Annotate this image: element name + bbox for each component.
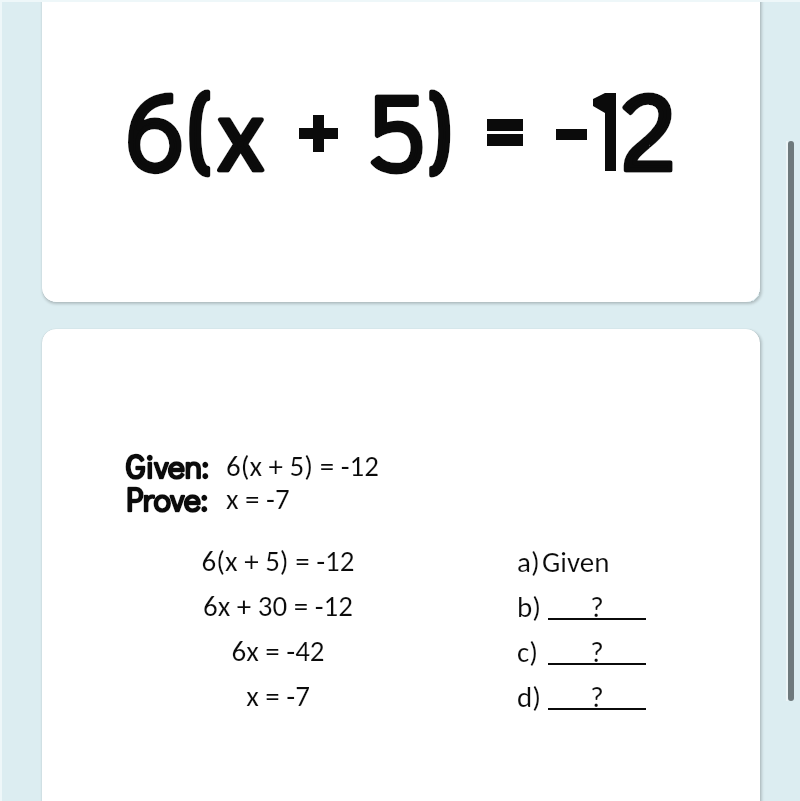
staticText: Given: [126,445,209,487]
staticText: 2 [622,58,676,198]
staticText: 6 [126,58,185,198]
staticText: 2 [622,58,676,198]
staticText: ? [548,679,646,714]
button[interactable]: Equation card [42,0,760,302]
staticText: Given [542,544,610,579]
staticText: ( [187,58,213,198]
button[interactable]: Two column proof card [42,329,760,801]
staticText: 6(x + 5) = -12 [158,543,398,578]
staticText: x [216,58,266,198]
staticText: a) [517,544,540,579]
staticText: 5 [367,58,428,198]
other: Scroll position [788,141,794,701]
staticText: x [216,58,266,198]
staticText: ( [187,58,213,198]
staticText: c) [517,634,539,669]
staticText: ? [548,634,646,669]
staticText: d) [517,679,542,714]
staticText: 6 [126,58,185,198]
staticText: Given: [126,445,209,487]
staticText: ) [427,58,453,198]
staticText: b) [517,589,542,624]
staticText: Prove: [126,478,208,520]
staticText: ? [548,589,646,624]
staticText: Prove: [126,478,208,520]
staticText: 6(x + 5) = -12 [226,448,379,483]
staticText: x = -7 [226,481,290,516]
staticText: x = -7 [158,678,398,713]
staticText: ) [427,58,453,198]
staticText: 5 [367,58,428,198]
staticText: 6x + 30 = -12 [158,588,398,623]
staticText: 6x = -42 [158,633,398,668]
